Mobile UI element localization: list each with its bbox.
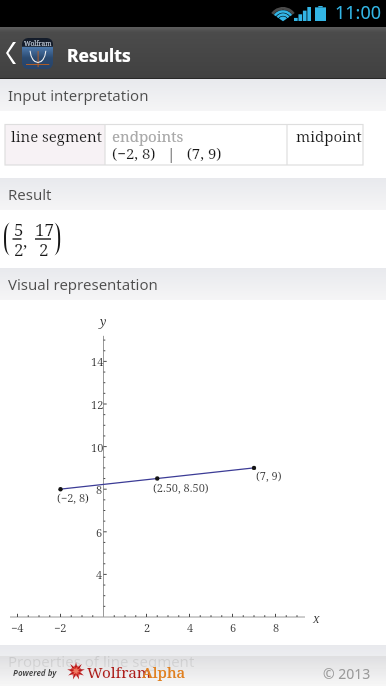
- staticText: endpoints: [112, 126, 184, 146]
- staticText: y: [100, 313, 107, 329]
- staticText: 14: [91, 354, 104, 369]
- button[interactable]: Result: [0, 178, 386, 210]
- staticText: midpoint: [296, 126, 362, 146]
- staticText: 2: [14, 238, 24, 261]
- staticText: (−2, 8): [57, 490, 89, 505]
- staticText: 8: [273, 620, 280, 635]
- staticText: −2: [54, 620, 67, 635]
- staticText: Wolfram: [87, 662, 152, 682]
- staticText: 8: [96, 482, 103, 497]
- staticText: Wolfram: [24, 39, 52, 48]
- staticText: ,: [23, 229, 28, 252]
- staticText: x: [313, 610, 320, 626]
- staticText: (7, 9): [256, 468, 282, 483]
- staticText: 11:00: [335, 0, 382, 25]
- button[interactable]: Properties of line segment: [0, 645, 386, 677]
- staticText: 6: [230, 620, 237, 635]
- staticText: (−2, 8) | (7, 9): [112, 143, 222, 163]
- staticText: Alpha: [142, 662, 186, 682]
- staticText: Result: [8, 184, 52, 204]
- staticText: Visual representation: [8, 274, 158, 294]
- staticText: © 2013: [323, 664, 371, 683]
- staticText: 6: [96, 525, 103, 540]
- staticText: Input interpretation: [8, 85, 149, 105]
- staticText: Results: [67, 43, 131, 67]
- button[interactable]: Input interpretation: [0, 79, 386, 111]
- button[interactable]: Navigate up: [0, 27, 386, 79]
- button[interactable]: Powered by: [0, 656, 386, 686]
- staticText: 4: [187, 620, 194, 635]
- staticText: line segment: [11, 126, 103, 146]
- staticText: 5: [14, 218, 24, 241]
- staticText: 10: [91, 440, 104, 455]
- other: Navigate up: [0, 27, 22, 79]
- staticText: 17: [35, 218, 55, 241]
- staticText: −4: [11, 620, 24, 635]
- staticText: 4: [96, 567, 103, 582]
- staticText: Powered by: [13, 667, 57, 678]
- staticText: Properties of line segment: [8, 651, 195, 671]
- staticText: 2: [144, 620, 151, 635]
- staticText: (2.50, 8.50): [153, 480, 209, 495]
- button[interactable]: Visual representation: [0, 268, 386, 300]
- staticText: 2: [39, 238, 49, 261]
- staticText: 12: [91, 397, 104, 412]
